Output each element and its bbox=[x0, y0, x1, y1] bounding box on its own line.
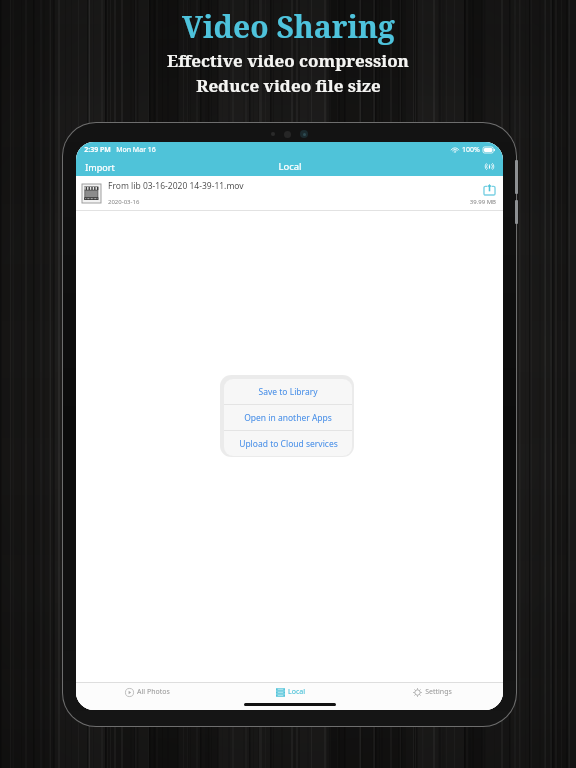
button[interactable]: From lib 03-16-2020 14-39-11.mov bbox=[76, 176, 503, 211]
staticText: Reduce video file size bbox=[196, 74, 381, 97]
button[interactable]: Save to Library bbox=[224, 379, 352, 404]
staticText: Local bbox=[288, 687, 305, 697]
staticText: Local bbox=[278, 160, 302, 173]
staticText: 39.99 MB bbox=[469, 198, 496, 206]
button[interactable]: Local bbox=[219, 683, 361, 701]
staticText: 2020-03-16 bbox=[108, 198, 140, 206]
staticText: Mon Mar 16 bbox=[116, 145, 156, 155]
staticText: Import bbox=[85, 161, 115, 173]
button[interactable]: Open in another Apps bbox=[224, 405, 352, 430]
staticText: Video Sharing bbox=[182, 6, 395, 47]
button[interactable]: AirPlay bbox=[476, 157, 503, 176]
staticText: All Photos bbox=[137, 687, 170, 697]
button[interactable]: Share bbox=[483, 183, 496, 196]
staticText: Upload to Cloud services bbox=[239, 438, 338, 450]
staticText: Effective video compression bbox=[167, 49, 409, 72]
staticText: 2:39 PM bbox=[84, 145, 111, 155]
staticText: 100% bbox=[462, 145, 480, 155]
button[interactable]: Settings bbox=[361, 683, 503, 701]
staticText: From lib 03-16-2020 14-39-11.mov bbox=[108, 180, 244, 192]
button[interactable]: Upload to Cloud services bbox=[224, 431, 352, 456]
staticText: Save to Library bbox=[258, 386, 318, 398]
button[interactable]: All Photos bbox=[76, 683, 219, 701]
staticText: Settings bbox=[425, 687, 452, 697]
button[interactable]: Import bbox=[76, 157, 124, 176]
staticText: Open in another Apps bbox=[244, 412, 332, 424]
